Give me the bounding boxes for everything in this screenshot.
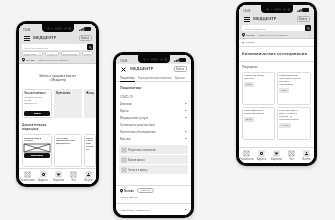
staticText: Расписание <box>239 157 254 161</box>
button[interactable]: Женщинам <box>84 89 96 118</box>
button[interactable]: Личный кабинет <box>22 89 52 118</box>
button[interactable]: Мужчинам <box>54 89 82 118</box>
staticText: 10:45 <box>243 9 251 13</box>
staticText: Войти <box>299 157 314 161</box>
staticText: Москва <box>26 59 35 62</box>
staticText: Запись к врачу <box>128 168 148 172</box>
staticText: Записаться <box>84 52 91 55</box>
staticText: Подробнее о Медцентре <box>120 208 149 211</box>
staticText: Пациентам <box>120 85 142 90</box>
button[interactable]: Москва <box>19 57 96 63</box>
button[interactable]: Результаты анализов <box>119 145 188 154</box>
button[interactable]: Вакцинация <box>61 51 80 56</box>
button[interactable]: Анализы <box>239 39 314 46</box>
button[interactable]: 740 ₽ <box>279 88 289 93</box>
button[interactable]: Close <box>120 66 127 73</box>
button[interactable]: Расписание <box>239 148 254 163</box>
staticText: Covid-19 <box>47 52 57 55</box>
staticText: 1 110 ₽ <box>281 124 289 127</box>
button[interactable]: Вакцинация в пункты <box>22 134 52 167</box>
staticText: 10:45 <box>120 59 128 63</box>
button[interactable]: Вызов врача <box>119 155 188 164</box>
staticText: 244 ₽ <box>246 83 252 86</box>
button[interactable]: Корзина <box>269 148 284 163</box>
button[interactable]: Пациентам <box>120 76 135 80</box>
button[interactable]: Поиск по Медцентру <box>22 44 87 50</box>
staticText: Войти <box>299 17 308 21</box>
button[interactable]: Москва <box>239 32 314 38</box>
staticText: Доказательная медицина <box>22 123 47 131</box>
button[interactable]: Изменить <box>137 188 154 193</box>
staticText: Корзина <box>51 178 66 182</box>
staticText: Чат <box>66 178 81 182</box>
staticText: Забота о здоровье вместе с Медцентр <box>19 74 96 82</box>
button[interactable]: Корзина <box>51 169 66 184</box>
staticText: Войти <box>176 67 185 71</box>
button[interactable]: Календарь <box>22 51 43 56</box>
staticText: Что такое доказательная медицина? <box>56 136 75 145</box>
staticText: 861 ₽ <box>246 118 252 121</box>
staticText: Изменить <box>140 189 151 192</box>
button[interactable]: Медицинские услуги <box>116 114 191 121</box>
button[interactable]: Гликированный гемоглобин (HbA1C, Glycate… <box>277 72 311 105</box>
button[interactable]: Врачи <box>116 107 191 114</box>
staticText: Трехмерные диагностики <box>120 123 155 127</box>
button[interactable]: Что такое доказательная медицина? <box>54 134 82 167</box>
button[interactable]: Search <box>305 25 311 31</box>
staticText: Анализы <box>245 41 255 44</box>
button[interactable]: Войти <box>24 111 50 116</box>
button[interactable]: Поиск в Медцентр <box>242 25 305 31</box>
button[interactable]: Covid-19 <box>45 51 59 56</box>
button[interactable]: Эозинофильный катионный белок <box>242 107 275 140</box>
staticText: Адреса и контакты офисов <box>38 59 68 62</box>
staticText: Адреса <box>254 157 269 161</box>
button[interactable]: Войти <box>297 16 310 22</box>
button[interactable]: 861 ₽ <box>244 117 254 122</box>
staticText: Гликированный гемоглобин (HbA1C, Glycate… <box>279 74 302 86</box>
staticText: МЕДЦЕНТР <box>253 16 277 22</box>
button[interactable]: 23ОН витамин D (25ОН Vitamin D, 25(OH)D,… <box>277 107 311 140</box>
staticText: Популярное <box>242 65 258 69</box>
button[interactable]: 1 110 ₽ <box>279 123 291 128</box>
button[interactable]: Записаться <box>24 153 50 158</box>
staticText: Эозинофильный катионный белок <box>244 109 264 115</box>
staticText: Результаты анализов <box>128 148 156 152</box>
button[interactable]: Войти <box>174 66 187 72</box>
staticText: Расписание <box>19 178 35 182</box>
button[interactable]: Запись к врачу <box>119 165 188 174</box>
button[interactable]: Адреса <box>35 169 51 184</box>
button[interactable]: Контактная обследование <box>116 128 191 135</box>
button[interactable]: Записаться <box>82 51 93 56</box>
staticText: Личный кабинет <box>24 91 46 94</box>
staticText: Врачи <box>120 109 129 113</box>
button[interactable]: Анализы <box>116 100 191 107</box>
button[interactable]: Глюкоза (в крови) (Glucose) <box>242 72 275 105</box>
button[interactable]: Новые методы лечения <box>84 134 96 167</box>
staticText: Биохимические исследования <box>242 51 307 57</box>
button[interactable]: Чат <box>284 148 299 163</box>
staticText: Поиск в Медцентр <box>244 27 266 30</box>
button[interactable]: Корпоративным клиентам <box>138 76 172 80</box>
staticText: Войти <box>34 112 41 115</box>
button[interactable]: Войти <box>299 148 314 163</box>
button[interactable]: Menu <box>23 35 30 42</box>
staticText: Медицинские услуги <box>120 116 149 120</box>
staticText: Адреса и контакты офисов <box>258 34 288 37</box>
button[interactable]: Подробнее о Медцентре <box>116 204 191 215</box>
button[interactable]: Menu <box>243 16 250 23</box>
button[interactable]: Врачам <box>175 76 185 80</box>
button[interactable]: Массаж <box>116 135 191 142</box>
button[interactable]: Чат <box>66 169 81 184</box>
button[interactable]: Войти <box>81 169 96 184</box>
button[interactable]: Трехмерные диагностики <box>116 121 191 128</box>
button[interactable]: Search <box>87 44 93 50</box>
button[interactable]: 244 ₽ <box>244 82 254 87</box>
staticText: Вакцинация в пункты <box>24 136 42 142</box>
button[interactable]: COVID-19 <box>116 93 191 100</box>
button[interactable]: Войти <box>79 35 92 41</box>
staticText: Москва <box>246 34 255 37</box>
button[interactable]: Адреса <box>254 148 269 163</box>
staticText: 10:45 <box>23 28 31 32</box>
staticText: Женщинам <box>86 91 94 94</box>
button[interactable]: Расписание <box>19 169 35 184</box>
